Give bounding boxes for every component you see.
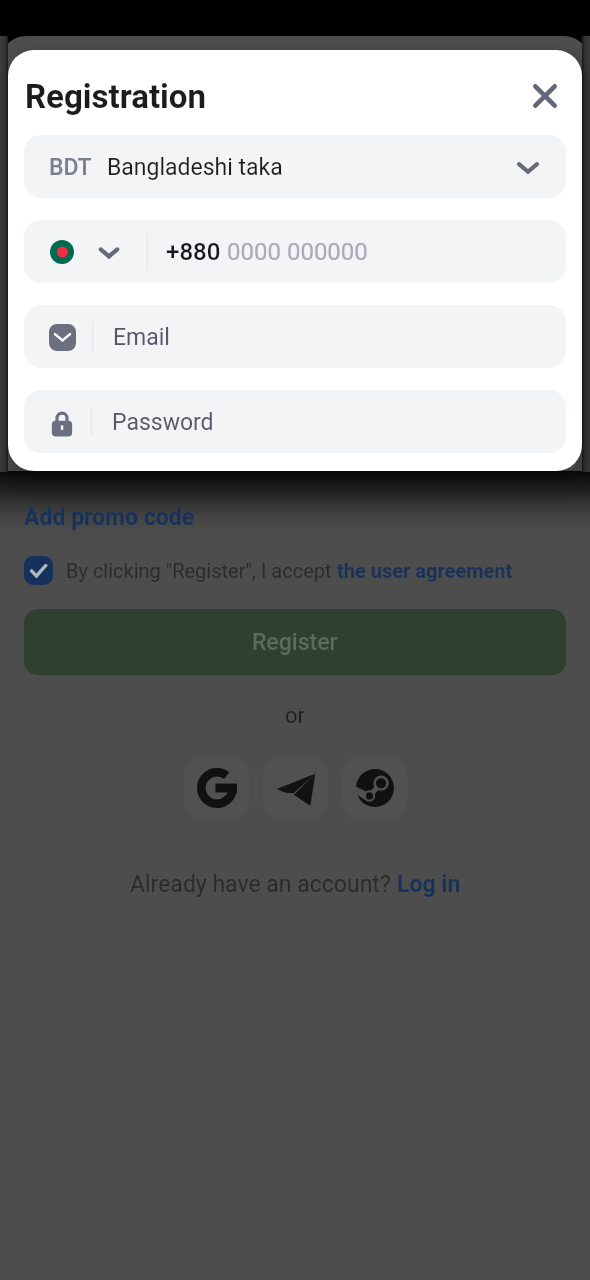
button[interactable]: Password	[24, 390, 566, 453]
staticText: Email	[113, 324, 170, 351]
staticText: BDT	[49, 154, 92, 181]
staticText: 0000 000000	[227, 238, 368, 266]
staticText: Register	[252, 629, 338, 656]
staticText: By clicking "Register", I accept	[66, 559, 337, 582]
staticText: Already have an account?	[130, 871, 397, 898]
button[interactable]: Sign in with Telegram	[263, 756, 328, 820]
staticText: Bangladeshi taka	[107, 154, 283, 181]
button[interactable]: +880	[24, 220, 566, 283]
staticText: Add promo code	[24, 504, 195, 531]
button[interactable]: Add promo code	[24, 504, 195, 531]
button[interactable]: By clicking "Register", I accept	[24, 556, 513, 585]
button[interactable]: Close	[523, 74, 567, 118]
button[interactable]: Sign in with Steam	[342, 756, 407, 820]
staticText: the user agreement	[337, 559, 513, 582]
button[interactable]: Email	[24, 305, 566, 368]
button[interactable]: Register	[24, 609, 566, 675]
staticText: Log in	[397, 871, 461, 898]
staticText: Password	[112, 409, 214, 436]
staticText: or	[285, 703, 306, 729]
button[interactable]: BDT	[24, 135, 566, 198]
staticText: Registration	[25, 77, 206, 116]
button[interactable]: Sign in with Google	[184, 756, 249, 820]
button[interactable]: Log in	[397, 871, 461, 898]
staticText: +880	[166, 238, 227, 266]
